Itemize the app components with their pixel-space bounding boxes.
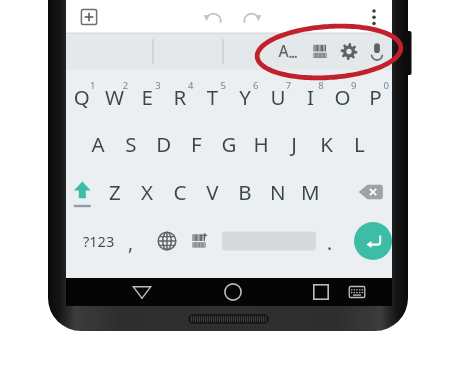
button[interactable]: Switch keyboard [339, 280, 376, 306]
button[interactable]: Settings [335, 34, 364, 69]
button[interactable]: Voice input [363, 34, 392, 69]
button[interactable]: Undo [198, 3, 230, 31]
button[interactable]: Backspace [356, 173, 391, 211]
button[interactable]: Back [120, 280, 164, 306]
button[interactable]: Recent apps [299, 280, 343, 306]
button[interactable]: Change language [150, 222, 184, 260]
button[interactable]: Scan barcode [183, 222, 216, 260]
button[interactable]: Home [211, 280, 255, 306]
button[interactable]: More options [360, 2, 388, 32]
button[interactable]: Redo [237, 3, 269, 31]
button[interactable]: Enter [354, 222, 392, 260]
button[interactable]: Scan barcode [305, 34, 335, 69]
button[interactable]: Shift [68, 173, 102, 211]
button[interactable]: Space [220, 222, 318, 260]
button[interactable]: Add [74, 3, 106, 31]
button[interactable]: Symbols [68, 222, 114, 260]
button[interactable]: Text formatting [272, 34, 302, 69]
